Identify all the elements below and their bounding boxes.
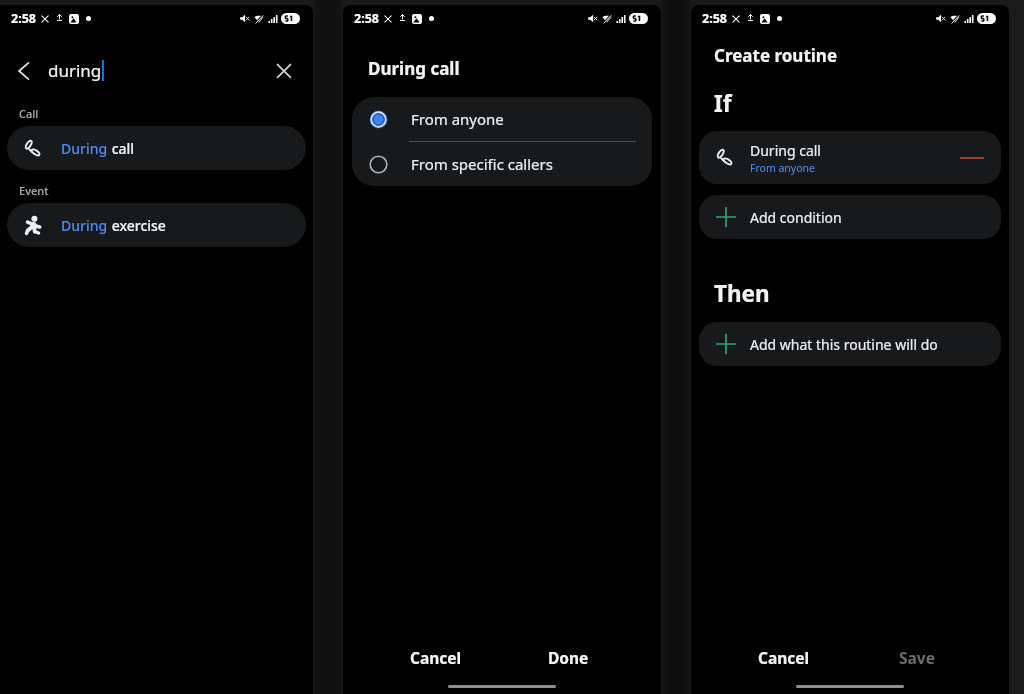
button[interactable]: Add condition [699,195,1001,239]
staticText: exercise [108,216,166,235]
staticText: during [48,59,102,82]
staticText: Cancel [410,647,462,668]
button[interactable]: During [7,203,306,247]
button[interactable]: During call [699,131,1001,184]
button[interactable]: From specific callers [352,142,652,186]
staticText: During call [750,141,821,160]
staticText: Add what this routine will do [750,335,938,354]
button[interactable]: Remove condition [954,140,990,176]
staticText: Then [714,278,770,309]
staticText: During [61,216,108,235]
staticText: From specific callers [411,154,553,174]
staticText: 2:58 [702,10,727,27]
staticText: During call [368,57,460,80]
staticText: Add condition [750,208,842,227]
button[interactable]: Done [502,630,635,684]
staticText: Event [19,183,49,198]
staticText: From anyone [411,109,504,129]
staticText: call [108,139,135,158]
staticText: Cancel [758,647,810,668]
staticText: During [61,139,108,158]
button[interactable]: Cancel [717,630,850,684]
button[interactable]: Cancel [369,630,502,684]
button[interactable]: During [7,126,306,170]
staticText: 2:58 [11,10,36,27]
button[interactable]: Save [850,630,983,684]
button[interactable]: Add what this routine will do [699,322,1001,366]
staticText: From anyone [750,161,815,175]
button[interactable]: From anyone [352,97,652,141]
staticText: Save [899,647,935,668]
button[interactable]: Back [0,48,46,94]
staticText: If [714,88,732,119]
staticText: Call [19,106,39,121]
staticText: Create routine [714,44,838,67]
button[interactable]: Clear search [261,48,307,94]
staticText: Done [548,647,589,668]
staticText: 2:58 [354,10,379,27]
